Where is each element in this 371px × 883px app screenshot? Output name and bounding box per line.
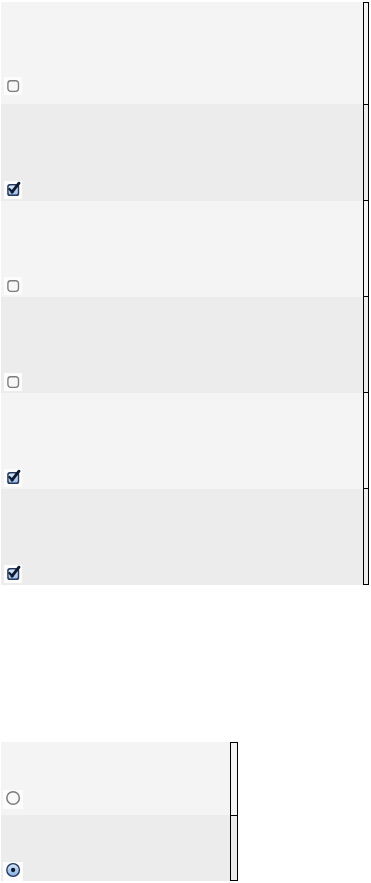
button[interactable]	[1, 297, 369, 393]
button[interactable]	[1, 815, 238, 881]
button[interactable]	[1, 393, 369, 489]
button[interactable]	[1, 489, 369, 585]
button[interactable]	[1, 104, 369, 201]
button[interactable]	[1, 742, 238, 815]
button[interactable]	[1, 201, 369, 297]
button[interactable]	[1, 2, 369, 104]
